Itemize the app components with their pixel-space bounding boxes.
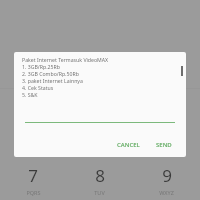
staticText: 9 xyxy=(162,164,172,187)
staticText: PQRS xyxy=(26,189,41,196)
button[interactable]: 7 xyxy=(0,158,66,200)
staticText: SEND xyxy=(156,141,172,149)
button[interactable]: CANCEL xyxy=(113,138,144,152)
staticText: 1. 3GB/Rp.25Rb xyxy=(22,63,60,70)
staticText: 3. paket Internet Lainnya xyxy=(22,77,83,84)
button[interactable]: SEND xyxy=(152,138,176,152)
staticText: 2. 3GB Combo/Rp.50Rb xyxy=(22,70,79,77)
staticText: 5. S&K xyxy=(22,91,38,98)
staticText: 7 xyxy=(28,164,38,187)
button[interactable]: 9 xyxy=(133,158,200,200)
staticText: CANCEL xyxy=(117,141,140,149)
staticText: TUV xyxy=(94,189,105,196)
staticText: 8 xyxy=(95,164,105,187)
staticText: 4. Cek Status xyxy=(22,84,54,91)
staticText: WXYZ xyxy=(159,189,174,196)
button[interactable]: 8 xyxy=(66,158,133,200)
staticText: Paket Internet Termasuk VideoMAX xyxy=(22,56,109,63)
